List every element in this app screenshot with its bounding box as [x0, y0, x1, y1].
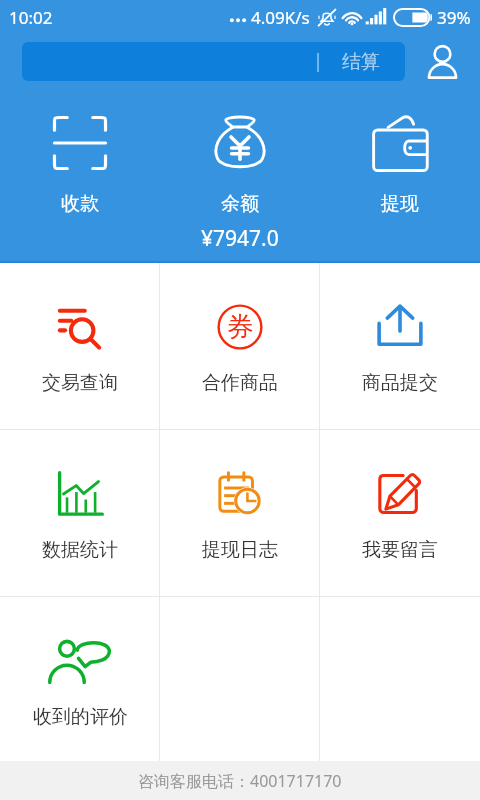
button[interactable]: 提现	[320, 114, 480, 259]
staticText: 4.09K/s	[251, 6, 310, 29]
staticText: 39%	[437, 6, 471, 29]
button[interactable]: Account	[405, 35, 480, 87]
staticText: 我要留言	[362, 538, 438, 562]
button[interactable]: 余额	[160, 114, 320, 259]
staticText: 收到的评价	[33, 705, 128, 729]
staticText: 提现	[381, 192, 419, 216]
staticText: 数据统计	[42, 538, 118, 562]
button[interactable]: 我要留言	[320, 430, 480, 596]
staticText: 券	[227, 310, 254, 344]
staticText: ¥7947.0	[201, 224, 279, 253]
staticText: 10:02	[9, 6, 53, 29]
staticText: 收款	[61, 192, 99, 216]
button[interactable]: 收款	[0, 114, 160, 259]
button[interactable]: 券	[160, 263, 320, 429]
staticText: 提现日志	[202, 538, 278, 562]
button[interactable]: 结算	[22, 42, 405, 81]
button[interactable]: 商品提交	[320, 263, 480, 429]
button[interactable]: 数据统计	[0, 430, 160, 596]
staticText: 合作商品	[202, 371, 278, 395]
staticText: 商品提交	[362, 371, 438, 395]
staticText: 结算	[342, 50, 380, 74]
staticText: 咨询客服电话：4001717170	[138, 770, 342, 792]
button[interactable]: 收到的评价	[0, 597, 160, 761]
staticText: 交易查询	[42, 371, 118, 395]
button[interactable]: 提现日志	[160, 430, 320, 596]
button[interactable]: 交易查询	[0, 263, 160, 429]
staticText: 余额	[221, 192, 259, 216]
